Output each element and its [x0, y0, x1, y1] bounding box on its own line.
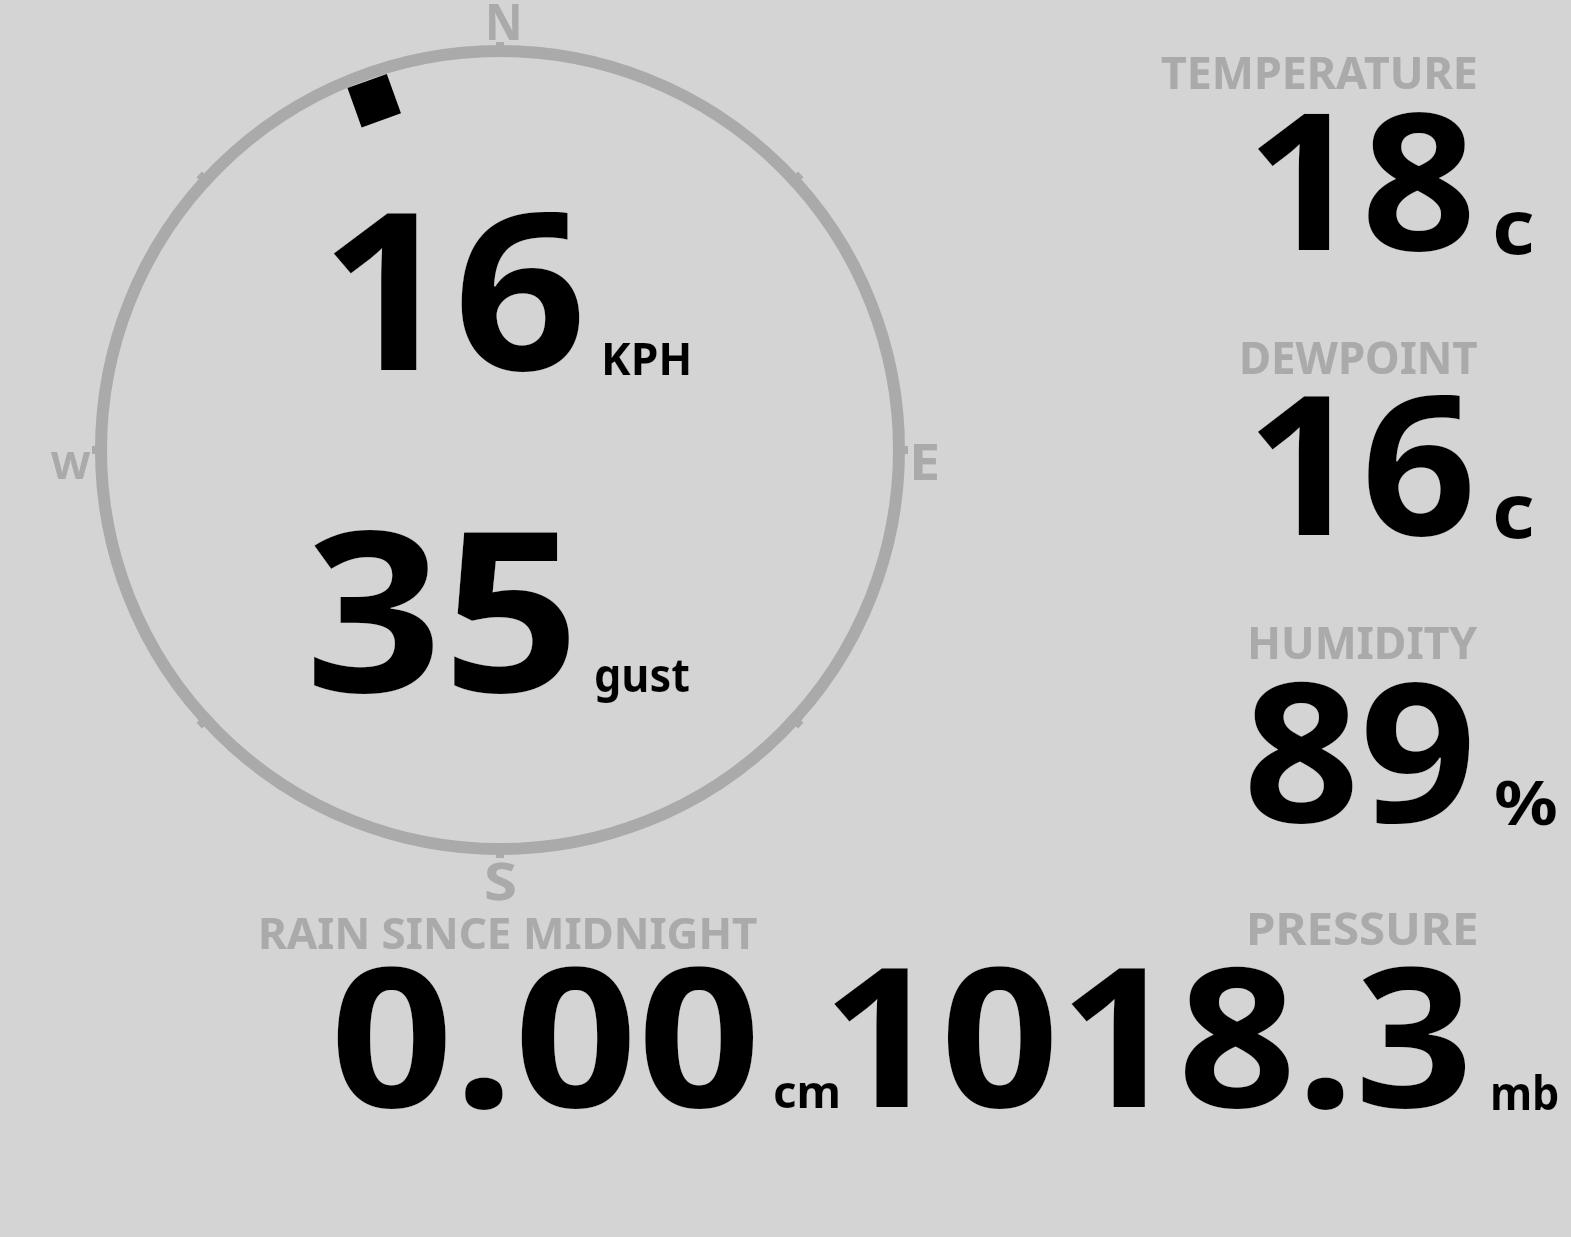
staticText: 35 — [305, 453, 580, 757]
staticText: RAIN SINCE MIDNIGHT — [258, 903, 758, 962]
staticText: 16 — [1246, 328, 1477, 583]
staticText: DEWPOINT — [1239, 327, 1478, 387]
staticText: E — [909, 427, 940, 495]
button[interactable]: Rain since midnight 0.00 centimetres — [230, 885, 800, 1137]
staticText: % — [1494, 759, 1558, 843]
staticText: c — [1492, 173, 1535, 276]
button[interactable]: Wind 16 KPH gusting 35, direction north … — [40, 0, 960, 900]
staticText: mb — [1490, 1060, 1560, 1123]
staticText: 89 — [1243, 615, 1476, 870]
button[interactable]: Temperature 18 degrees Celsius — [1140, 30, 1565, 285]
staticText: W — [51, 439, 91, 490]
staticText: 18 — [1246, 46, 1476, 301]
staticText: cm — [773, 1060, 841, 1121]
staticText: gust — [594, 642, 690, 706]
button[interactable]: Dewpoint 16 degrees Celsius — [1140, 315, 1565, 570]
staticText: PRESSURE — [1246, 898, 1479, 958]
staticText: N — [485, 0, 523, 54]
staticText: KPH — [601, 326, 693, 388]
staticText: TEMPERATURE — [1161, 41, 1478, 103]
staticText: S — [484, 845, 518, 915]
staticText: c — [1492, 457, 1535, 560]
button[interactable]: Pressure 1018.3 millibars — [800, 885, 1571, 1137]
staticText: 0.00 — [330, 900, 761, 1152]
staticText: 1018.3 — [822, 900, 1474, 1152]
button[interactable]: Humidity 89 percent — [1140, 600, 1571, 855]
staticText: 16 — [320, 135, 588, 434]
staticText: HUMIDITY — [1247, 611, 1477, 673]
